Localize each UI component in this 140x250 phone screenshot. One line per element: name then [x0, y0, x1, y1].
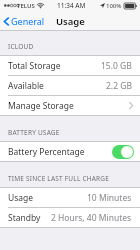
staticText: 2.2 GB [106, 80, 132, 92]
staticText: TIME SINCE LAST FULL CHARGE [8, 174, 110, 183]
staticText: Total Storage [8, 60, 61, 72]
staticText: 100% [106, 2, 122, 10]
staticText: 10 Minutes [87, 192, 132, 204]
button[interactable]: Usage [0, 188, 140, 207]
button[interactable]: Battery Percentage toggle [112, 145, 134, 159]
staticText: 15.0 GB [101, 60, 132, 72]
staticText: BATTERY USAGE [8, 128, 60, 137]
button[interactable]: Standby [0, 208, 140, 227]
button[interactable]: General [0, 13, 49, 29]
staticText: TELUS [17, 2, 35, 10]
staticText: Usage [8, 192, 34, 204]
button[interactable]: Available [0, 76, 140, 95]
button[interactable]: Manage Storage [0, 96, 140, 115]
staticText: Usage [56, 15, 85, 28]
staticText: 11:34 AM [57, 1, 86, 10]
staticText: ICLOUD [8, 42, 34, 51]
staticText: Battery Percentage [8, 146, 85, 158]
staticText: 2 Hours, 40 Minutes [51, 212, 132, 224]
button[interactable]: Total Storage [0, 56, 140, 75]
staticText: General [11, 15, 45, 27]
staticText: Manage Storage [8, 100, 74, 112]
staticText: Standby [8, 212, 41, 224]
staticText: Available [8, 80, 44, 92]
